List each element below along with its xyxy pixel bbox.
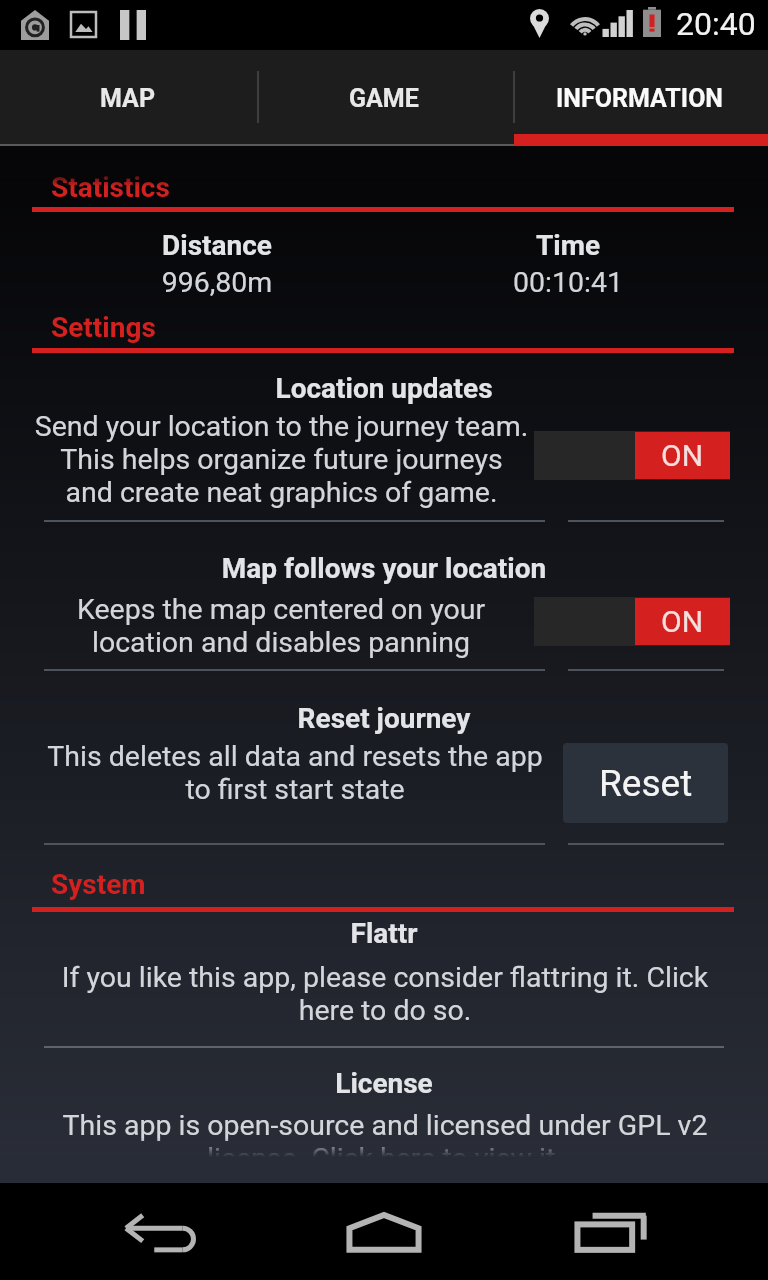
staticText: This app is open-source and licensed und…: [45, 1109, 725, 1175]
button[interactable]: MAP: [0, 50, 256, 146]
staticText: Send your location to the journey team. …: [34, 410, 529, 509]
staticText: 20:40: [676, 5, 756, 43]
staticText: INFORMATION: [556, 84, 724, 113]
staticText: License: [0, 1067, 768, 1100]
button[interactable]: Location updates: [0, 360, 768, 522]
staticText: Time: [408, 229, 728, 262]
button[interactable]: Home: [256, 1183, 512, 1280]
button[interactable]: Back: [0, 1183, 256, 1280]
button[interactable]: License: [0, 1055, 768, 1192]
button[interactable]: Map follows your location: [0, 540, 768, 671]
staticText: GAME: [349, 84, 419, 113]
button[interactable]: GAME: [256, 50, 512, 146]
staticText: Keeps the map centered on your location …: [56, 593, 506, 659]
button[interactable]: Reset journey: [0, 690, 768, 845]
button[interactable]: Location updates switch, on: [534, 431, 730, 480]
staticText: If you like this app, please consider fl…: [45, 961, 725, 1027]
button[interactable]: Reset: [563, 743, 728, 823]
staticText: Statistics: [51, 171, 170, 204]
staticText: MAP: [100, 84, 156, 113]
staticText: Location updates: [0, 372, 768, 405]
staticText: Flattr: [0, 917, 768, 950]
staticText: Map follows your location: [0, 552, 768, 585]
staticText: ON: [661, 438, 704, 473]
staticText: 00:10:41: [408, 266, 728, 299]
button[interactable]: INFORMATION: [512, 50, 768, 146]
staticText: System: [51, 868, 146, 901]
staticText: 996,80m: [57, 266, 377, 299]
staticText: Reset: [599, 762, 693, 805]
staticText: Settings: [51, 311, 156, 344]
staticText: Reset journey: [0, 702, 768, 735]
staticText: ON: [661, 604, 704, 639]
button[interactable]: Recent apps: [512, 1183, 768, 1280]
button[interactable]: Flattr: [0, 905, 768, 1048]
button[interactable]: Map follows your location switch, on: [534, 597, 730, 646]
staticText: This deletes all data and resets the app…: [45, 740, 545, 806]
staticText: Distance: [57, 229, 377, 262]
